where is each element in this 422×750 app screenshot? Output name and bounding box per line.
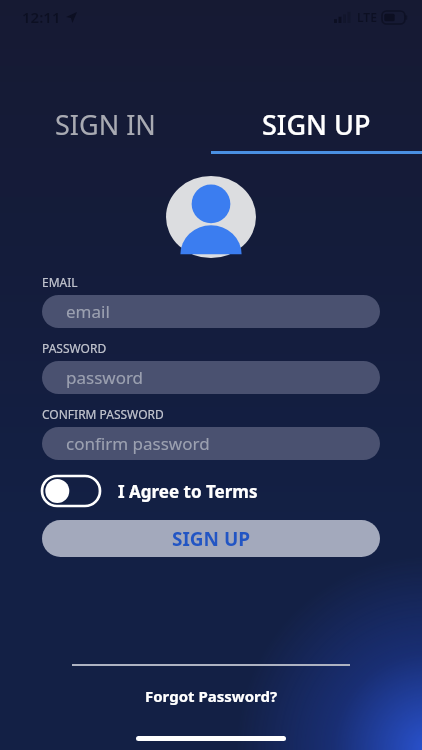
staticText: SIGN UP [172,526,251,552]
staticText: SIGN IN [55,106,156,143]
staticText: SIGN UP [262,106,371,143]
button[interactable]: password [42,361,380,394]
button[interactable]: confirm password [42,427,380,460]
staticText: Forgot Password? [145,686,278,706]
staticText: PASSWORD [42,340,107,356]
staticText: confirm password [66,432,210,455]
staticText: I Agree to Terms [118,480,258,503]
button[interactable]: Forgot Password? [0,682,422,710]
staticText: email [66,300,110,323]
button[interactable]: SIGN IN [0,106,211,154]
button[interactable]: SIGN UP [211,106,422,154]
button[interactable]: I Agree to Terms [42,476,258,506]
staticText: 12:11 [22,7,61,27]
button[interactable]: SIGN UP [42,520,380,557]
button[interactable]: email [42,295,380,328]
staticText: LTE [357,9,377,25]
staticText: EMAIL [42,274,78,290]
staticText: CONFIRM PASSWORD [42,406,164,422]
staticText: password [66,366,144,389]
